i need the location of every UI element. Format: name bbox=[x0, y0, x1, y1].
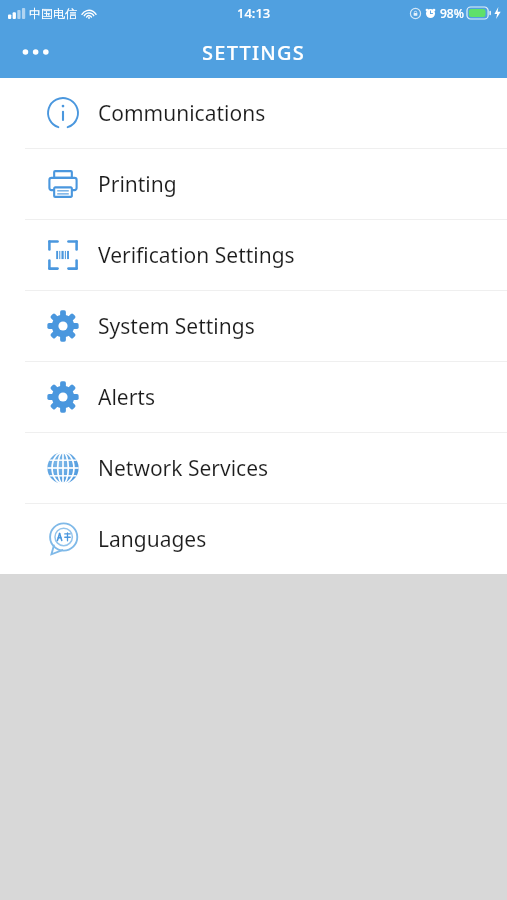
staticText: Network Services bbox=[98, 454, 269, 483]
staticText: Languages bbox=[98, 525, 207, 554]
button[interactable]: Verification Settings bbox=[0, 220, 507, 290]
button[interactable]: Alerts bbox=[0, 362, 507, 432]
button[interactable]: Communications bbox=[0, 78, 507, 148]
staticText: System Settings bbox=[98, 312, 255, 341]
staticText: Printing bbox=[98, 170, 177, 199]
button[interactable]: More options bbox=[14, 34, 60, 70]
staticText: Communications bbox=[98, 99, 266, 128]
staticText: Verification Settings bbox=[98, 241, 295, 270]
staticText: Alerts bbox=[98, 383, 155, 412]
button[interactable]: System Settings bbox=[0, 291, 507, 361]
button[interactable]: Languages bbox=[0, 504, 507, 574]
staticText: SETTINGS bbox=[202, 39, 305, 66]
staticText: 14:13 bbox=[237, 4, 271, 22]
staticText: 中国电信 bbox=[29, 6, 77, 21]
button[interactable]: Printing bbox=[0, 149, 507, 219]
staticText: 98% bbox=[440, 5, 464, 21]
button[interactable]: Network Services bbox=[0, 433, 507, 503]
